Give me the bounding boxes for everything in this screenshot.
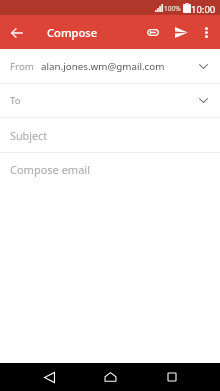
button[interactable]: Subject xyxy=(0,118,220,152)
staticText: Compose xyxy=(47,25,98,40)
staticText: alan.jones.wm@gmail.com xyxy=(41,60,165,73)
button[interactable]: Compose email xyxy=(0,153,220,189)
button[interactable]: Attach file xyxy=(138,16,168,49)
button[interactable]: Back xyxy=(32,363,66,391)
staticText: 100% xyxy=(164,4,181,13)
staticText: From xyxy=(10,60,35,73)
button[interactable]: More options xyxy=(194,16,219,49)
button[interactable]: Send xyxy=(168,16,194,49)
staticText: 10:00 xyxy=(191,3,216,16)
button[interactable]: Home xyxy=(93,363,127,391)
button[interactable]: To xyxy=(0,84,220,117)
staticText: Subject xyxy=(10,128,48,143)
button[interactable]: Recents xyxy=(155,363,189,391)
button[interactable]: From xyxy=(0,49,220,83)
button[interactable]: Back xyxy=(0,16,33,49)
staticText: Compose email xyxy=(10,162,90,177)
staticText: To xyxy=(10,94,21,107)
